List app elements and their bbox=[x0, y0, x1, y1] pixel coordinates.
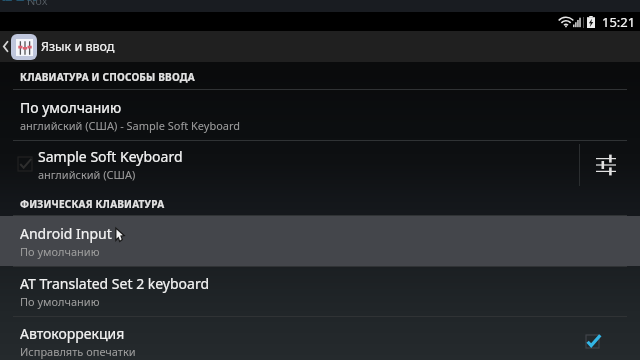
staticText: ФИЗИЧЕСКАЯ КЛАВИАТУРА bbox=[20, 197, 165, 211]
staticText: Язык и ввод bbox=[41, 38, 115, 55]
staticText: Sample Soft Keyboard bbox=[38, 147, 183, 166]
staticText: Автокоррекция bbox=[20, 324, 125, 343]
button[interactable]: Back bbox=[0, 31, 11, 62]
button[interactable]: Автокоррекция bbox=[0, 320, 640, 360]
staticText: По умолчанию bbox=[20, 244, 100, 259]
staticText: По умолчанию bbox=[20, 294, 100, 309]
staticText: По умолчанию bbox=[20, 98, 122, 117]
staticText: Nox bbox=[27, 0, 48, 5]
staticText: Android Input bbox=[20, 224, 112, 243]
staticText: английский (США) bbox=[38, 167, 136, 182]
staticText: КЛАВИАТУРА И СПОСОБЫ ВВОДА bbox=[20, 70, 195, 84]
staticText: английский (США) - Sample Soft Keyboard bbox=[20, 118, 241, 133]
staticText: nox bbox=[1, 0, 38, 1]
staticText: Исправлять опечатки bbox=[20, 344, 136, 359]
button[interactable]: По умолчанию bbox=[0, 90, 640, 140]
staticText: AT Translated Set 2 keyboard bbox=[20, 274, 210, 293]
button[interactable]: Keyboard settings bbox=[580, 141, 640, 188]
staticText: 15:21 bbox=[602, 13, 636, 31]
button[interactable]: AT Translated Set 2 keyboard bbox=[0, 266, 640, 316]
button[interactable]: Android Input bbox=[0, 216, 640, 266]
button[interactable]: Sample Soft Keyboard bbox=[0, 141, 579, 188]
